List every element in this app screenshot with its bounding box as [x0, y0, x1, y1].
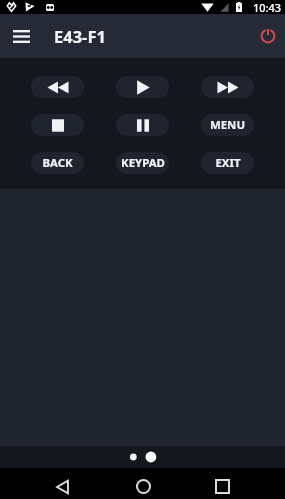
button[interactable]: BACK: [31, 152, 84, 174]
button[interactable]: Home: [123, 468, 163, 499]
button[interactable]: Rewind: [31, 76, 84, 98]
button[interactable]: MENU: [201, 114, 254, 136]
staticText: EXIT: [215, 155, 241, 171]
button[interactable]: Power: [254, 22, 282, 50]
staticText: MENU: [210, 117, 245, 133]
button[interactable]: KEYPAD: [116, 152, 169, 174]
staticText: E43-F1: [54, 25, 106, 47]
button[interactable]: Pause: [116, 114, 169, 136]
button[interactable]: Recents: [202, 468, 242, 499]
staticText: BACK: [42, 155, 73, 171]
staticText: KEYPAD: [121, 155, 165, 171]
button[interactable]: Stop: [31, 114, 84, 136]
button[interactable]: Play: [116, 76, 169, 98]
button[interactable]: Back: [42, 468, 82, 499]
button[interactable]: Menu: [6, 21, 36, 51]
button[interactable]: EXIT: [201, 152, 254, 174]
staticText: 10:43: [253, 0, 282, 14]
button[interactable]: Fast forward: [201, 76, 254, 98]
